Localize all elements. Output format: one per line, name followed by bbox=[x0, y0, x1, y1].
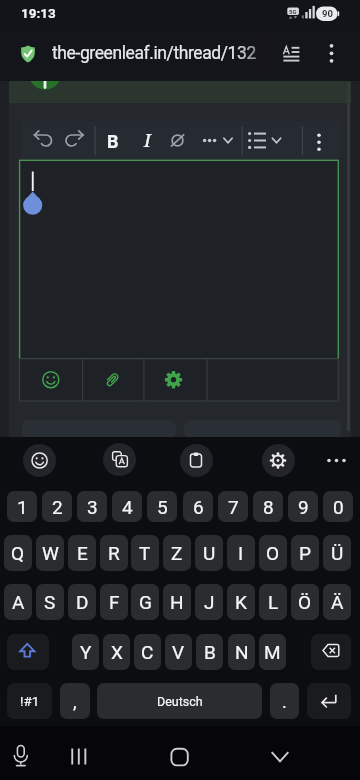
staticText: O bbox=[266, 542, 280, 564]
staticText: 0 bbox=[333, 496, 344, 518]
staticText: M bbox=[264, 641, 281, 663]
button[interactable] bbox=[103, 443, 136, 476]
button[interactable]: E bbox=[68, 535, 96, 571]
staticText: 9 bbox=[298, 496, 309, 518]
button[interactable]: L bbox=[259, 584, 287, 620]
button[interactable] bbox=[7, 634, 49, 670]
button[interactable] bbox=[180, 444, 213, 477]
button[interactable]: 5 bbox=[147, 491, 177, 522]
button[interactable]: K bbox=[227, 584, 255, 620]
button[interactable] bbox=[10, 34, 260, 76]
button[interactable]: C bbox=[134, 634, 161, 670]
staticText: , bbox=[73, 691, 77, 712]
button[interactable]: F bbox=[100, 584, 128, 620]
button[interactable]: O bbox=[259, 535, 287, 571]
staticText: C bbox=[141, 641, 154, 663]
button[interactable]: 6 bbox=[183, 491, 213, 522]
button[interactable] bbox=[307, 683, 351, 719]
staticText: 1 bbox=[17, 496, 28, 518]
button[interactable]: J bbox=[195, 584, 223, 620]
button[interactable]: R bbox=[100, 535, 128, 571]
button[interactable]: 2 bbox=[42, 491, 72, 522]
button[interactable]: 9 bbox=[288, 491, 318, 522]
button[interactable] bbox=[165, 740, 195, 772]
staticText: Ä bbox=[331, 591, 344, 613]
button[interactable]: W bbox=[36, 535, 64, 571]
button[interactable]: I bbox=[227, 535, 255, 571]
button[interactable] bbox=[133, 126, 161, 155]
staticText: D bbox=[76, 591, 89, 613]
button[interactable]: S bbox=[36, 584, 64, 620]
staticText: Z bbox=[171, 542, 183, 564]
button[interactable] bbox=[20, 160, 339, 358]
staticText: P bbox=[299, 542, 311, 564]
button[interactable]: M bbox=[259, 634, 286, 670]
staticText: Ö bbox=[298, 591, 312, 613]
button[interactable] bbox=[28, 126, 56, 155]
button[interactable] bbox=[164, 126, 192, 155]
button[interactable]: Y bbox=[72, 634, 99, 670]
button[interactable]: G bbox=[131, 584, 159, 620]
button[interactable] bbox=[322, 446, 352, 475]
button[interactable]: H bbox=[163, 584, 191, 620]
staticText: 6 bbox=[193, 496, 204, 518]
button[interactable] bbox=[99, 126, 127, 155]
staticText: E bbox=[77, 542, 88, 564]
button[interactable]: 3 bbox=[77, 491, 107, 522]
button[interactable]: Ü bbox=[323, 535, 351, 571]
staticText: 2 bbox=[52, 496, 63, 518]
button[interactable] bbox=[262, 444, 295, 477]
button[interactable]: Q bbox=[4, 535, 32, 571]
button[interactable] bbox=[202, 126, 230, 155]
button[interactable]: 4 bbox=[112, 491, 142, 522]
button[interactable]: B bbox=[196, 634, 223, 670]
staticText: U bbox=[203, 542, 216, 564]
button[interactable]: . bbox=[270, 683, 299, 719]
button[interactable] bbox=[21, 359, 82, 401]
button[interactable]: Deutsch bbox=[97, 683, 262, 719]
button[interactable] bbox=[248, 126, 276, 155]
staticText: 3 bbox=[87, 496, 98, 518]
staticText: Q bbox=[11, 542, 25, 564]
staticText: H bbox=[170, 591, 184, 613]
button[interactable]: Z bbox=[163, 535, 191, 571]
button[interactable]: 7 bbox=[218, 491, 248, 522]
button[interactable]: D bbox=[68, 584, 96, 620]
button[interactable]: 8 bbox=[253, 491, 283, 522]
button[interactable] bbox=[144, 359, 205, 401]
button[interactable]: P bbox=[291, 535, 319, 571]
button[interactable] bbox=[265, 740, 295, 772]
button[interactable] bbox=[316, 38, 348, 72]
button[interactable]: T bbox=[131, 535, 159, 571]
button[interactable]: 0 bbox=[323, 491, 353, 522]
button[interactable] bbox=[311, 634, 351, 670]
button[interactable] bbox=[23, 444, 56, 477]
staticText: I bbox=[144, 128, 151, 153]
button[interactable] bbox=[62, 126, 90, 155]
button[interactable]: Ä bbox=[323, 584, 351, 620]
staticText: I bbox=[238, 542, 244, 564]
staticText: 5G bbox=[289, 8, 297, 15]
button[interactable]: N bbox=[228, 634, 255, 670]
button[interactable]: !#1 bbox=[7, 683, 52, 719]
button[interactable] bbox=[6, 740, 36, 772]
staticText: N bbox=[235, 641, 249, 663]
button[interactable]: , bbox=[60, 683, 90, 719]
button[interactable]: X bbox=[103, 634, 130, 670]
staticText: S bbox=[44, 591, 56, 613]
button[interactable]: Ö bbox=[291, 584, 319, 620]
button[interactable]: U bbox=[195, 535, 223, 571]
button[interactable]: V bbox=[165, 634, 192, 670]
button[interactable] bbox=[272, 38, 306, 72]
staticText: R bbox=[108, 542, 120, 564]
staticText: Deutsch bbox=[157, 694, 203, 709]
button[interactable] bbox=[63, 740, 93, 772]
staticText: L bbox=[268, 591, 279, 613]
button[interactable] bbox=[305, 126, 333, 155]
button[interactable]: 1 bbox=[7, 491, 37, 522]
button[interactable] bbox=[83, 359, 144, 401]
staticText: V bbox=[172, 641, 185, 663]
button[interactable]: A bbox=[4, 584, 32, 620]
